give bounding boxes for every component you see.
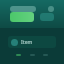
button[interactable]: More options <box>48 6 54 12</box>
button[interactable]: Menu <box>10 6 36 12</box>
button[interactable]: Primary action <box>10 12 34 22</box>
button[interactable]: Home <box>16 54 21 56</box>
button[interactable]: Item <box>8 36 56 48</box>
button[interactable]: Profile <box>43 54 48 56</box>
staticText: Item <box>21 39 33 46</box>
button[interactable]: Search <box>30 54 35 56</box>
